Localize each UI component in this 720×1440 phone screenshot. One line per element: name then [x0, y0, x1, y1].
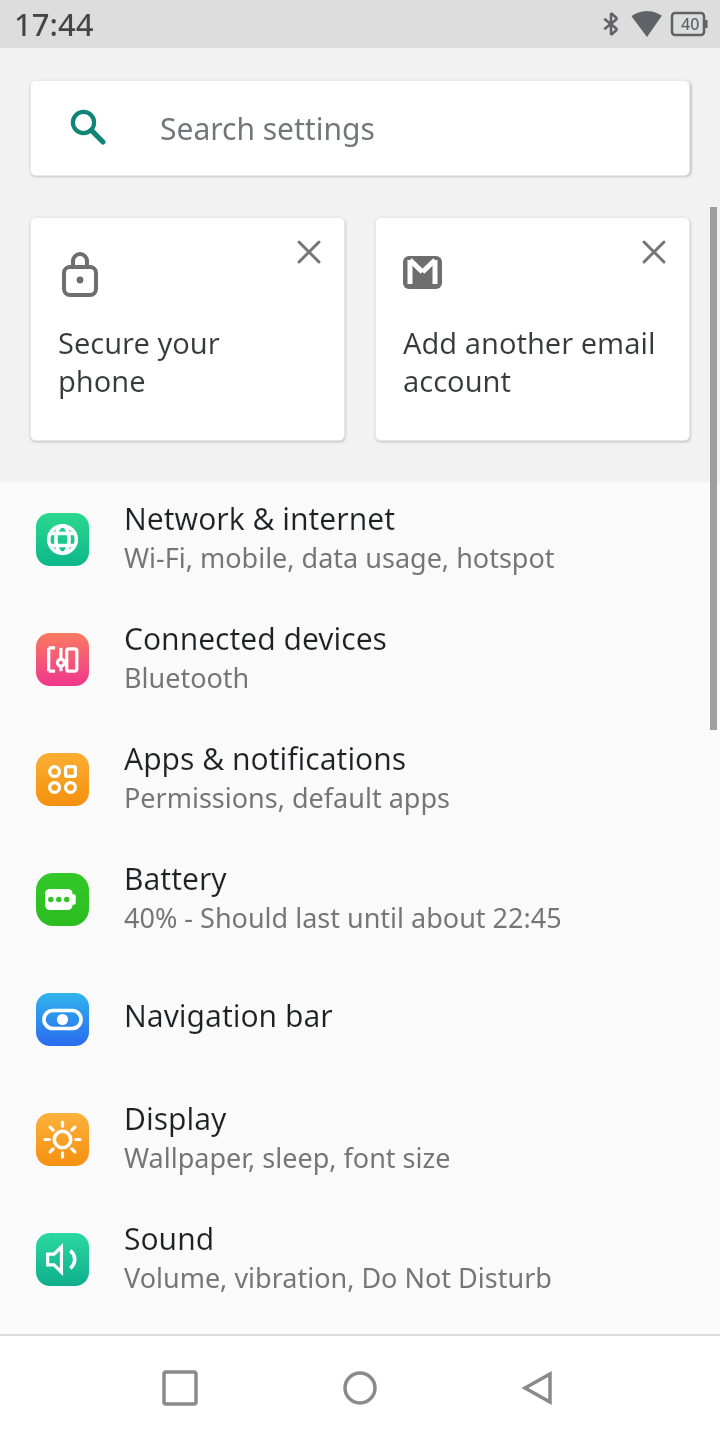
button[interactable]: [297, 240, 321, 264]
button[interactable]: [164, 1372, 196, 1404]
staticText: Add another email account: [403, 323, 656, 400]
button[interactable]: Add another email account: [375, 217, 690, 441]
staticText: Bluetooth: [124, 659, 250, 696]
button[interactable]: [642, 240, 666, 264]
button[interactable]: Network & internet: [0, 482, 720, 602]
staticText: Battery: [124, 858, 227, 899]
staticText: Connected devices: [124, 618, 387, 659]
staticText: Permissions, default apps: [124, 779, 450, 816]
button[interactable]: Display: [0, 1082, 720, 1202]
staticText: Wallpaper, sleep, font size: [124, 1139, 451, 1176]
staticText: 40: [681, 13, 700, 35]
button[interactable]: Battery: [0, 842, 720, 962]
staticText: Display: [124, 1098, 227, 1139]
button[interactable]: [344, 1372, 376, 1404]
button[interactable]: Navigation bar: [0, 962, 720, 1082]
staticText: Apps & notifications: [124, 738, 407, 779]
button[interactable]: [522, 1372, 554, 1404]
staticText: Network & internet: [124, 498, 395, 539]
staticText: 40% - Should last until about 22:45: [124, 899, 562, 936]
staticText: 17:44: [14, 3, 94, 45]
button[interactable]: Connected devices: [0, 602, 720, 722]
staticText: Sound: [124, 1218, 215, 1259]
staticText: Search settings: [160, 108, 375, 149]
button[interactable]: Search settings: [30, 80, 690, 176]
button[interactable]: Apps & notifications: [0, 722, 720, 842]
button[interactable]: Sound: [0, 1202, 720, 1322]
staticText: Volume, vibration, Do Not Disturb: [124, 1259, 552, 1296]
staticText: Navigation bar: [124, 995, 333, 1036]
staticText: Secure your phone: [58, 323, 220, 400]
staticText: Wi-Fi, mobile, data usage, hotspot: [124, 539, 555, 576]
button[interactable]: Secure your phone: [30, 217, 345, 441]
